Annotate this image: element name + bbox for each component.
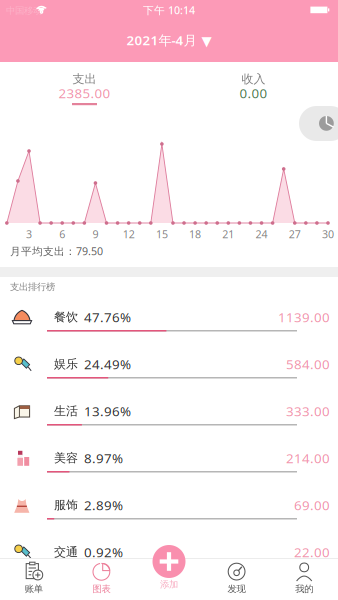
staticText: 24.49% [84, 355, 131, 373]
staticText: 214.00 [286, 449, 330, 467]
button[interactable]: 交通 [0, 541, 338, 588]
staticText: 0.00 [239, 84, 267, 102]
staticText: 月平均支出：79.50 [10, 244, 103, 258]
staticText: 0.92% [84, 543, 123, 561]
staticText: 69.00 [294, 496, 330, 514]
staticText: 21 [222, 227, 234, 241]
staticText: 22.00 [294, 543, 330, 561]
staticText: 27 [289, 227, 301, 241]
staticText: 6 [59, 227, 65, 241]
staticText: 3 [26, 227, 32, 241]
staticText: 支出排行榜 [10, 281, 55, 293]
button[interactable]: 添加 [135, 545, 203, 590]
button[interactable]: 账单 [0, 558, 68, 600]
staticText: 2.89% [84, 496, 123, 514]
button[interactable]: 美容 [0, 447, 338, 494]
staticText: 24 [256, 227, 268, 241]
button[interactable]: 生活 [0, 400, 338, 447]
staticText: 333.00 [286, 402, 330, 420]
staticText: 添加 [160, 578, 178, 590]
staticText: 生活 [54, 404, 78, 418]
button[interactable]: 服饰 [0, 494, 338, 541]
staticText: 收入 [241, 72, 265, 86]
staticText: 发现 [228, 583, 246, 595]
staticText: 我的 [295, 583, 313, 595]
staticText: 15 [156, 227, 168, 241]
staticText: 30 [322, 227, 334, 241]
button[interactable]: 图表 [68, 558, 135, 600]
staticText: 娱乐 [54, 357, 78, 371]
staticText: 中国移动 [6, 5, 42, 16]
staticText: 账单 [25, 583, 43, 595]
staticText: 2021年-4月 ▼ [126, 31, 211, 49]
staticText: 12 [123, 227, 135, 241]
staticText: 美容 [54, 451, 78, 465]
staticText: 下午 10:14 [143, 3, 195, 17]
staticText: 支出 [72, 72, 96, 86]
button[interactable]: 娱乐 [0, 353, 338, 400]
staticText: 交通 [54, 545, 78, 559]
staticText: 18 [189, 227, 201, 241]
button[interactable]: 餐饮 [0, 306, 338, 353]
button[interactable]: 我的 [270, 558, 338, 600]
staticText: 1139.00 [278, 308, 330, 326]
staticText: 584.00 [286, 355, 330, 373]
staticText: 8.97% [84, 449, 123, 467]
staticText: 餐饮 [54, 310, 78, 324]
staticText: 9 [92, 227, 98, 241]
staticText: 图表 [92, 583, 110, 595]
staticText: 13.96% [84, 402, 131, 420]
button[interactable]: Pie chart view [299, 106, 338, 141]
button[interactable]: 2021年-4月 ▼ [89, 28, 249, 52]
staticText: 服饰 [54, 498, 78, 512]
button[interactable]: 发现 [203, 558, 270, 600]
staticText: 47.76% [84, 308, 131, 326]
staticText: 2385.00 [58, 84, 110, 102]
